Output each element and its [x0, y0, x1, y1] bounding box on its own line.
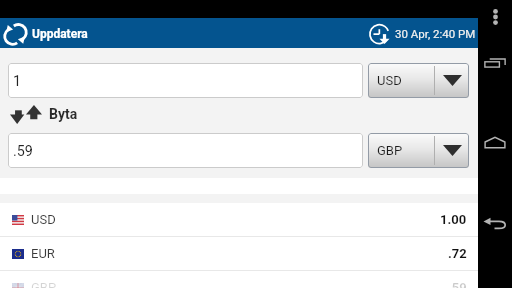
button[interactable]: Back [478, 200, 512, 245]
button[interactable]: USD [0, 203, 478, 237]
staticText: EUR [31, 246, 55, 261]
button[interactable]: USD [368, 63, 469, 98]
staticText: .59 [13, 143, 33, 160]
staticText: 1.00 [440, 212, 467, 227]
button[interactable]: Byta [10, 98, 478, 133]
button[interactable]: EUR [0, 237, 478, 271]
button[interactable]: GBP [368, 133, 469, 168]
staticText: USD [377, 73, 402, 88]
staticText: Uppdatera [32, 27, 88, 41]
staticText: USD [31, 212, 56, 227]
button[interactable]: 30 Apr, 2:40 PM [369, 23, 476, 44]
staticText: 1 [13, 73, 22, 90]
button[interactable]: .59 [8, 133, 363, 168]
staticText: 30 Apr, 2:40 PM [395, 27, 476, 40]
staticText: Byta [49, 106, 78, 122]
staticText: .59 [448, 280, 467, 288]
button[interactable]: Uppdatera [4, 22, 88, 45]
button[interactable]: Recents [478, 40, 512, 85]
staticText: GBP [377, 143, 403, 158]
button[interactable]: More options [478, 0, 512, 34]
staticText: GBP [31, 280, 57, 288]
button[interactable]: Home [478, 120, 512, 165]
button[interactable]: GBP [0, 271, 478, 288]
staticText: .72 [448, 246, 467, 261]
button[interactable]: 1 [8, 63, 363, 98]
